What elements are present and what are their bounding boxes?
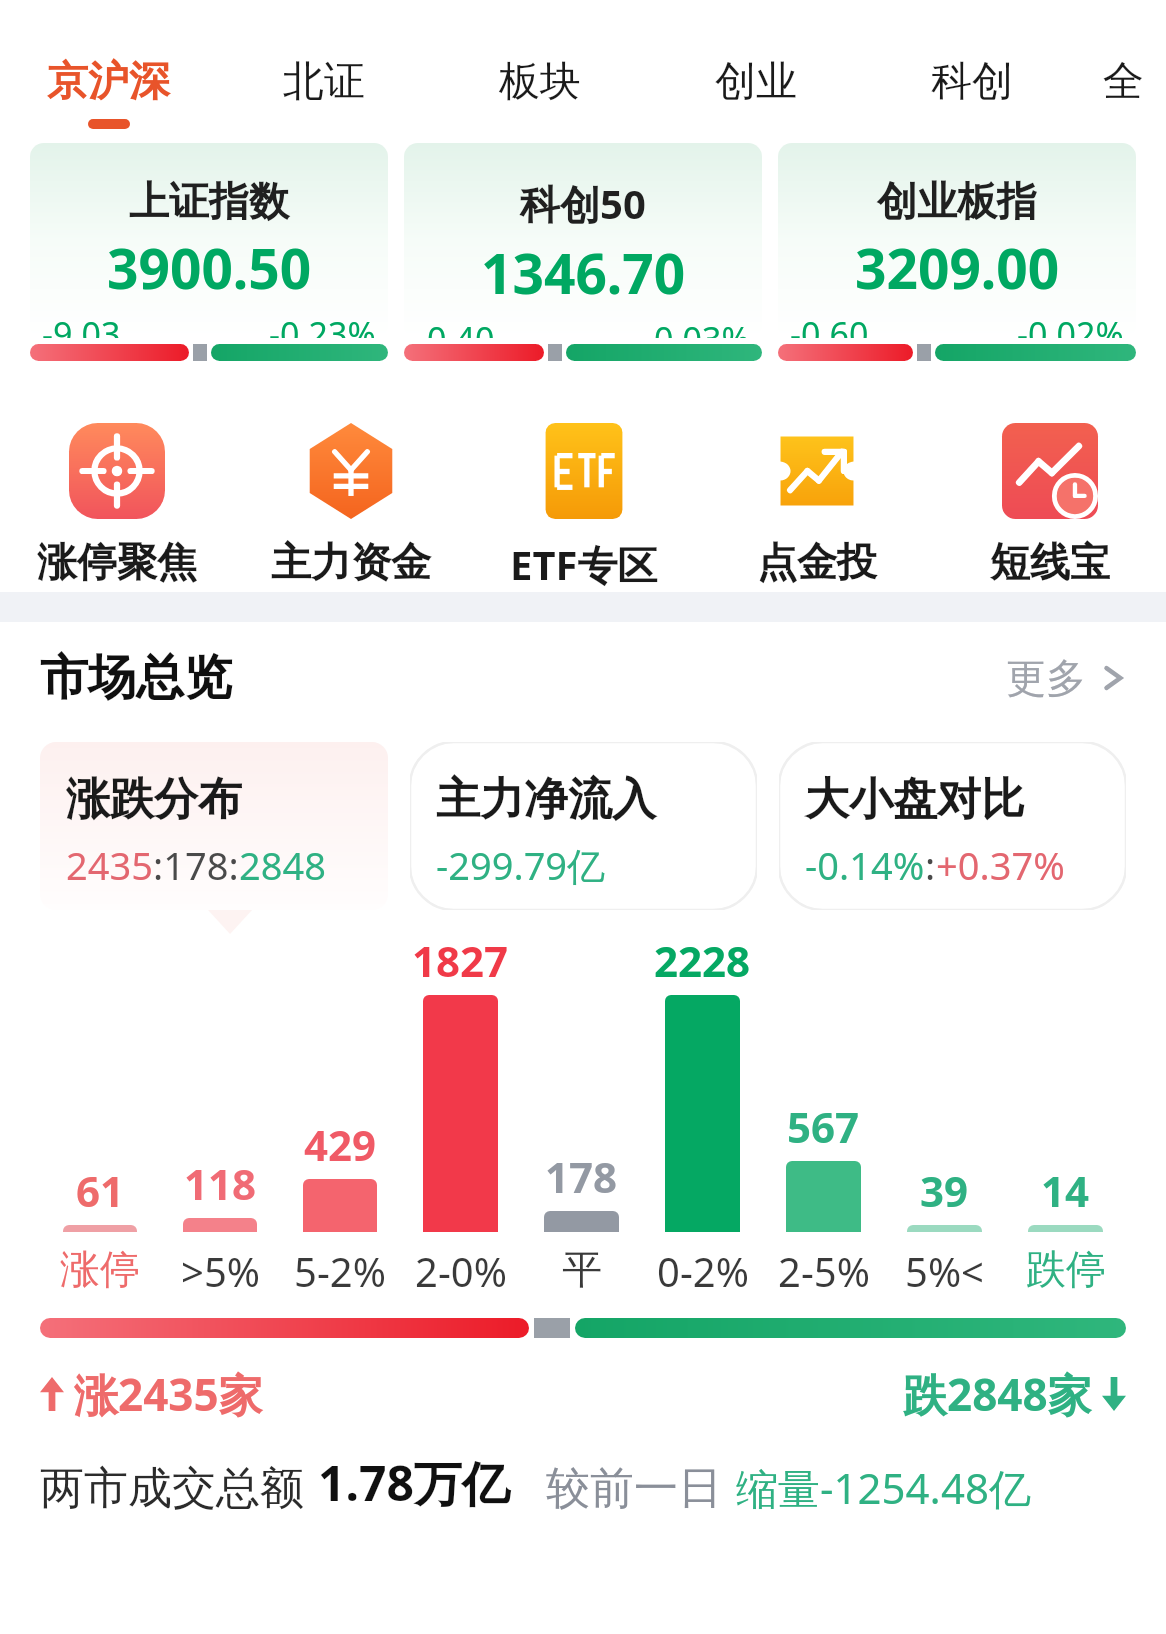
staticText: 点金投	[757, 537, 877, 587]
staticText: :178:	[153, 839, 239, 891]
button[interactable]: 更多	[1006, 653, 1126, 703]
staticText: 5-2%	[294, 1244, 386, 1298]
staticText: 1346.70	[481, 235, 686, 310]
staticText: 14	[1041, 1162, 1090, 1219]
button[interactable]: 板块	[432, 0, 648, 143]
button[interactable]: 上证指数	[30, 143, 388, 361]
staticText: :	[925, 839, 936, 891]
staticText: 创业	[715, 56, 797, 108]
staticText: 2228	[654, 932, 751, 989]
staticText: 3209.00	[855, 230, 1060, 305]
staticText: 178	[545, 1148, 618, 1205]
staticText: 118	[184, 1155, 257, 1212]
button[interactable]: 科创50	[404, 143, 762, 361]
button[interactable]: 点金投	[700, 423, 933, 587]
staticText: 2848	[239, 839, 326, 891]
button[interactable]: 涨停聚焦	[0, 423, 234, 587]
staticText: -0.03%	[643, 316, 750, 338]
button[interactable]: 主力净流入	[410, 742, 757, 910]
staticText: 全	[1103, 56, 1144, 108]
staticText: 上证指数	[129, 176, 289, 226]
staticText: -0.23%	[269, 311, 376, 338]
staticText: 较前一日	[546, 1461, 722, 1516]
button[interactable]: 创业	[648, 0, 864, 143]
staticText: 主力净流入	[436, 772, 656, 827]
staticText: 京沪深	[47, 56, 170, 108]
button[interactable]: 短线宝	[933, 423, 1166, 587]
staticText: -0.14%	[805, 839, 925, 891]
staticText: 创业板指	[877, 176, 1037, 226]
staticText: -0.02%	[1017, 311, 1124, 338]
staticText: 429	[304, 1116, 377, 1173]
button[interactable]: 大小盘对比	[779, 742, 1126, 910]
staticText: 涨停	[60, 1244, 140, 1294]
staticText: 市场总览	[40, 648, 232, 708]
button[interactable]: 主力资金	[234, 423, 467, 587]
button[interactable]: 创业板指	[778, 143, 1136, 361]
staticText: 2435	[66, 839, 153, 891]
button[interactable]: 北证	[216, 0, 432, 143]
staticText: 0-2%	[657, 1244, 749, 1298]
staticText: 39	[920, 1162, 969, 1219]
staticText: 平	[562, 1244, 602, 1294]
staticText: 科创	[931, 56, 1013, 108]
button[interactable]: 京沪深	[0, 0, 216, 143]
staticText: 2-5%	[778, 1244, 870, 1298]
staticText: >5%	[181, 1244, 260, 1298]
staticText: 大小盘对比	[805, 772, 1025, 827]
staticText: 缩量-1254.48亿	[736, 1459, 1031, 1516]
staticText: 两市成交总额	[40, 1461, 304, 1516]
button[interactable]: ETF专区	[467, 423, 700, 592]
staticText: 跌停	[1026, 1244, 1106, 1294]
staticText: ETF专区	[510, 537, 658, 592]
staticText: 科创50	[520, 176, 646, 231]
staticText: 涨2435家	[74, 1364, 263, 1424]
staticText: 更多	[1006, 653, 1086, 703]
staticText: -299.79亿	[436, 839, 606, 891]
staticText: 5%<	[905, 1244, 984, 1298]
staticText: 1827	[412, 932, 509, 989]
staticText: 跌2848家	[903, 1364, 1092, 1424]
staticText: 567	[787, 1098, 860, 1155]
staticText: 涨跌分布	[66, 772, 242, 827]
staticText: 2-0%	[415, 1244, 507, 1298]
staticText: -9.03	[42, 311, 121, 338]
staticText: 短线宝	[990, 537, 1110, 587]
staticText: +0.37%	[936, 839, 1065, 891]
staticText: 主力资金	[271, 537, 431, 587]
button[interactable]: 涨跌分布	[40, 742, 388, 910]
staticText: -0.60	[790, 311, 869, 338]
staticText: 板块	[499, 56, 581, 108]
staticText: 3900.50	[107, 230, 312, 305]
button[interactable]: 全	[1080, 0, 1166, 143]
staticText: 61	[76, 1162, 125, 1219]
staticText: 北证	[283, 56, 365, 108]
staticText: 涨停聚焦	[37, 537, 197, 587]
staticText: -0.40	[416, 316, 495, 338]
button[interactable]: 科创	[864, 0, 1080, 143]
staticText: 1.78万亿	[318, 1450, 510, 1516]
